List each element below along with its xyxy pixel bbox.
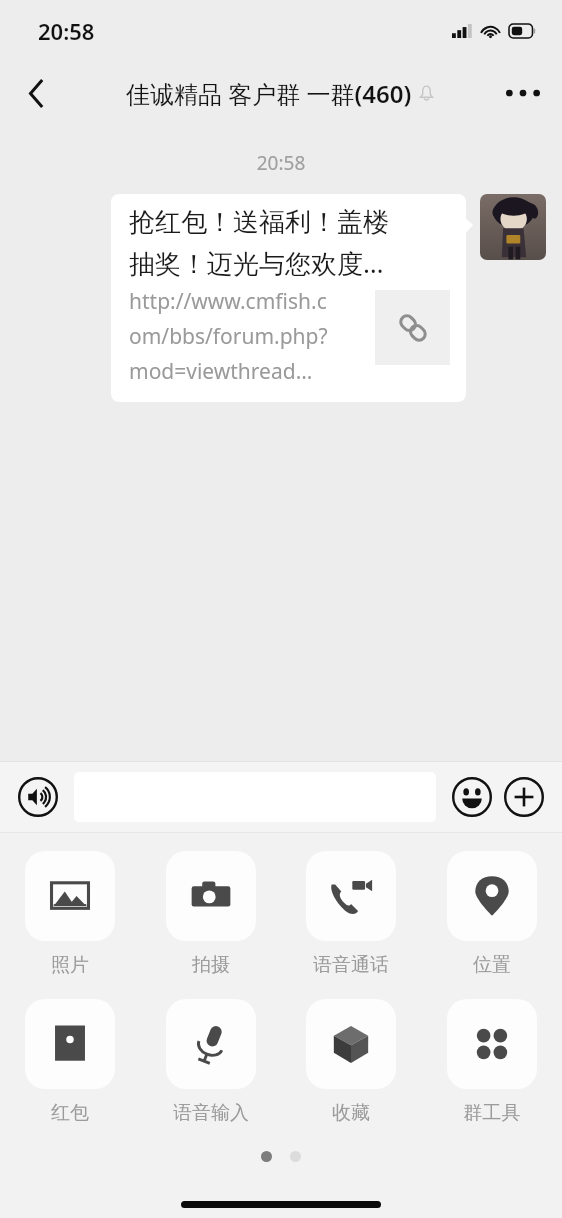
button[interactable]: 照片 xyxy=(22,851,118,977)
staticText: 收藏 xyxy=(303,1101,399,1125)
button[interactable]: 位置 xyxy=(444,851,540,977)
button[interactable]: 语音通话 xyxy=(303,851,399,977)
button[interactable]: 收藏 xyxy=(303,999,399,1125)
staticText: 位置 xyxy=(444,953,540,977)
staticText: 语音输入 xyxy=(163,1101,259,1125)
staticText: 照片 xyxy=(22,953,118,977)
button[interactable]: More functions xyxy=(502,775,546,819)
button[interactable]: Emoji xyxy=(450,775,494,819)
button[interactable]: Back xyxy=(10,67,62,119)
button[interactable]: 群工具 xyxy=(444,999,540,1125)
staticText: 语音通话 xyxy=(303,953,399,977)
button[interactable]: Avatar xyxy=(480,194,546,260)
button[interactable]: Voice message xyxy=(16,775,60,819)
staticText: 抢红包！送福利！盖楼 抽奖！迈光与您欢度… xyxy=(129,206,389,281)
staticText: 拍摄 xyxy=(163,953,259,977)
staticText: 20:58 xyxy=(38,16,95,46)
staticText: 群工具 xyxy=(444,1101,540,1125)
staticText: http://www.cmfish.c om/bbs/forum.php? mo… xyxy=(129,287,369,386)
button[interactable]: 拍摄 xyxy=(163,851,259,977)
staticText: 红包 xyxy=(22,1101,118,1125)
staticText: 20:58 xyxy=(0,150,562,176)
button[interactable]: 红包 xyxy=(22,999,118,1125)
button[interactable]: 抢红包！送福利！盖楼 抽奖！迈光与您欢度… xyxy=(111,194,466,402)
button[interactable]: More options xyxy=(496,66,550,120)
button[interactable]: 语音输入 xyxy=(163,999,259,1125)
staticText: 佳诚精品 客户群 一群(460) xyxy=(126,77,412,110)
